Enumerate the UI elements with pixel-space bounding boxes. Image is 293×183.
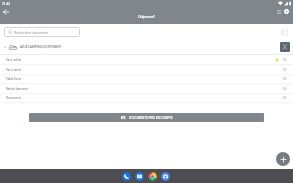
staticText: 11:42	[2, 2, 11, 6]
staticText: Rechercher document	[14, 30, 49, 34]
button[interactable]: Chrome	[148, 172, 157, 181]
button[interactable]: Relevé bancaire	[0, 84, 293, 94]
button[interactable]: Document	[0, 93, 293, 103]
button[interactable]: Fact. achat	[0, 55, 293, 65]
button[interactable]: Fact. vente	[0, 65, 293, 75]
button[interactable]: Table Excel	[0, 74, 293, 84]
staticText: Document	[6, 96, 21, 100]
button[interactable]: Add	[276, 152, 290, 166]
staticText: AZUR CAMPING EQUIPEMENT	[20, 45, 62, 49]
button[interactable]: Grid view	[278, 26, 290, 38]
staticText: (0)	[283, 68, 287, 72]
button[interactable]: Back	[0, 6, 12, 18]
staticText: (0)	[283, 87, 287, 91]
button[interactable]: Phone	[122, 172, 131, 181]
button[interactable]: Messages	[135, 172, 144, 181]
button[interactable]: DOCUMENTS PRIS EN COMPTE	[29, 113, 264, 122]
button[interactable]: Collapse all	[280, 42, 290, 52]
button[interactable]: Expand	[4, 43, 7, 51]
staticText: Relevé bancaire	[6, 87, 29, 91]
button[interactable]: Camera	[161, 172, 170, 181]
staticText: Fact. vente	[6, 68, 22, 72]
button[interactable]: List view	[273, 6, 285, 17]
staticText: (0)	[283, 58, 287, 62]
button[interactable]: Rechercher document	[4, 27, 80, 37]
staticText: (0)	[283, 77, 287, 81]
staticText: (0)	[283, 96, 287, 100]
staticText: Odpoveď	[138, 14, 155, 19]
staticText: Fact. achat	[6, 58, 22, 62]
button[interactable]: Settings	[280, 6, 292, 17]
staticText: DOCUMENTS PRIS EN COMPTE	[129, 116, 173, 120]
staticText: Table Excel	[6, 77, 22, 81]
